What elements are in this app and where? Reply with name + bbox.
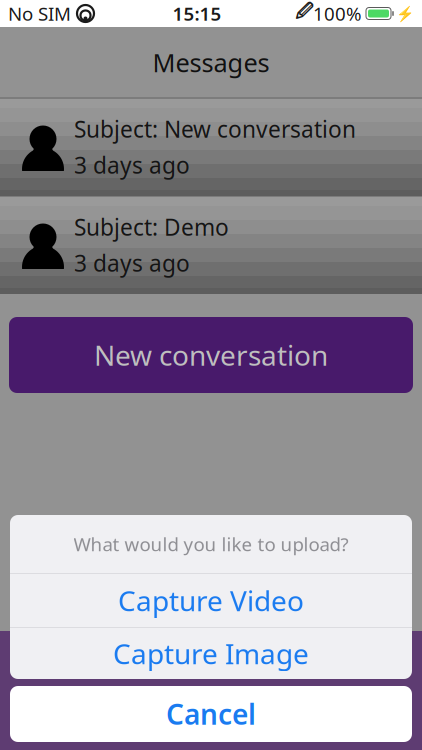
staticText: What would you like to upload? bbox=[73, 532, 348, 556]
staticText: ⚡ bbox=[396, 5, 414, 22]
button[interactable]: Capture Video bbox=[10, 574, 412, 627]
staticText: No SIM bbox=[8, 1, 71, 26]
button[interactable]: Capture Image bbox=[10, 628, 412, 679]
button[interactable]: Subject: Demo bbox=[0, 196, 422, 294]
staticText: 🖉 bbox=[295, 0, 313, 28]
button[interactable]: New conversation bbox=[9, 317, 413, 393]
staticText: Subject: New conversation bbox=[74, 114, 356, 144]
staticText: 3 days ago bbox=[74, 248, 190, 278]
staticText: Capture Video bbox=[118, 582, 304, 619]
staticText: 3 days ago bbox=[74, 150, 190, 180]
staticText: New conversation bbox=[94, 336, 328, 374]
staticText: Capture Image bbox=[113, 635, 309, 672]
button[interactable]: Subject: New conversation bbox=[0, 98, 422, 196]
button[interactable]: Cancel bbox=[10, 686, 412, 742]
staticText: Cancel bbox=[166, 695, 256, 733]
staticText: Messages bbox=[152, 46, 269, 79]
staticText: 100% bbox=[313, 1, 362, 26]
staticText: Subject: Demo bbox=[74, 212, 229, 242]
staticText: 15:15 bbox=[172, 1, 221, 26]
